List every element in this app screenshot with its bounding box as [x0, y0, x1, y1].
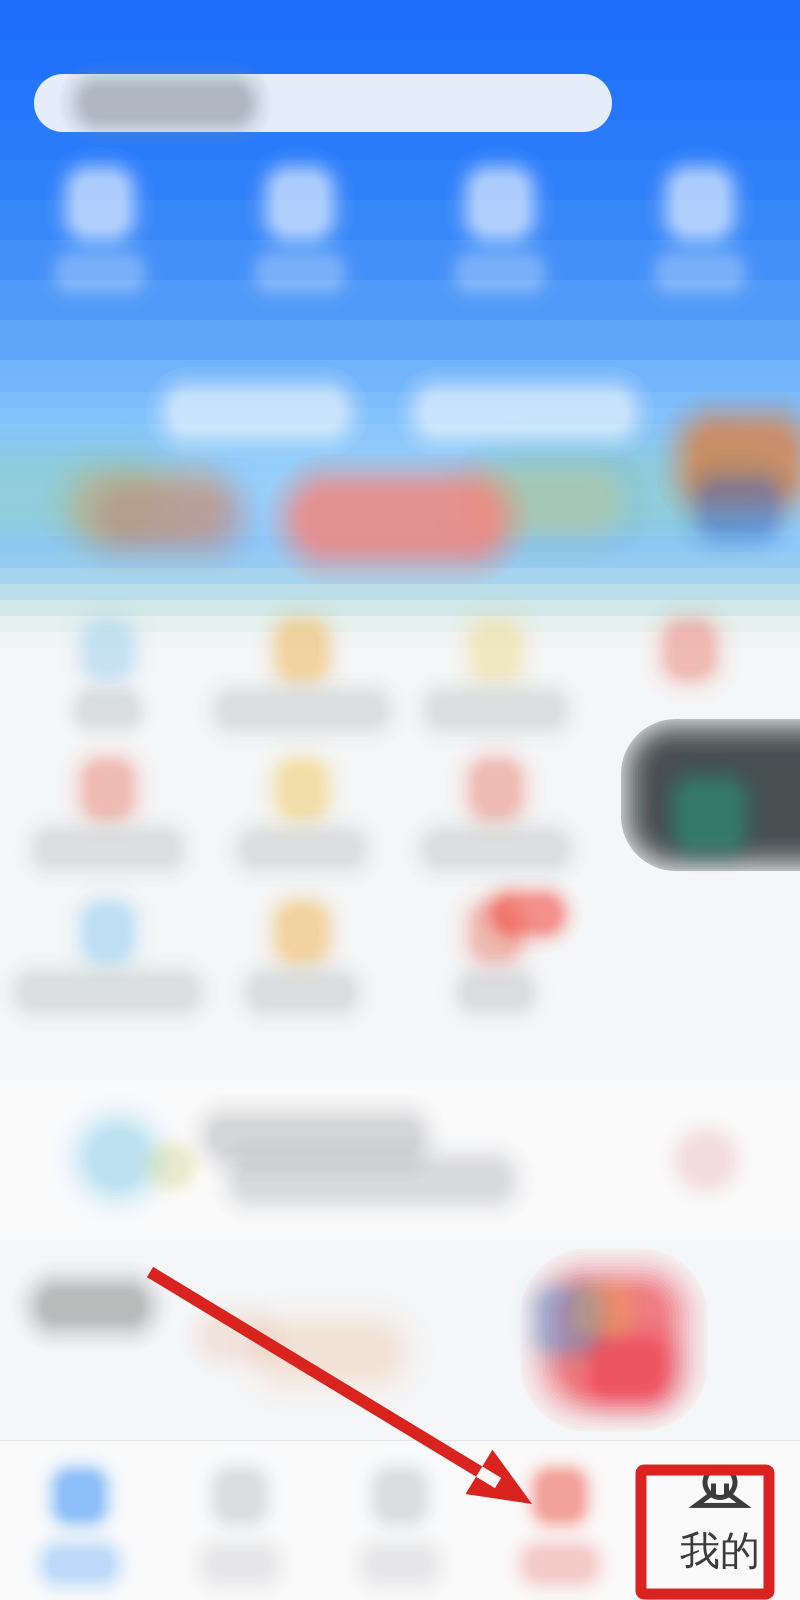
button[interactable]	[0, 1080, 800, 1240]
button[interactable]	[399, 746, 593, 884]
staticText: 我的	[680, 1526, 760, 1575]
button[interactable]	[600, 150, 800, 300]
button[interactable]	[11, 607, 205, 745]
button[interactable]: 发现	[320, 1440, 480, 1600]
button[interactable]	[399, 889, 593, 1027]
button[interactable]	[248, 439, 548, 599]
button[interactable]: 服务	[160, 1440, 320, 1600]
button[interactable]	[593, 607, 787, 745]
button[interactable]: 我的	[640, 1440, 800, 1600]
button[interactable]	[11, 746, 205, 884]
button[interactable]: 首页	[0, 1440, 160, 1600]
button[interactable]	[400, 150, 600, 300]
button[interactable]	[200, 150, 400, 300]
button[interactable]	[399, 607, 593, 745]
button[interactable]	[0, 1240, 800, 1450]
button[interactable]	[11, 889, 205, 1027]
button[interactable]	[205, 889, 399, 1027]
button[interactable]	[205, 746, 399, 884]
button[interactable]: 消息	[480, 1440, 640, 1600]
button[interactable]	[34, 74, 612, 132]
button[interactable]	[0, 150, 200, 300]
button[interactable]	[205, 607, 399, 745]
